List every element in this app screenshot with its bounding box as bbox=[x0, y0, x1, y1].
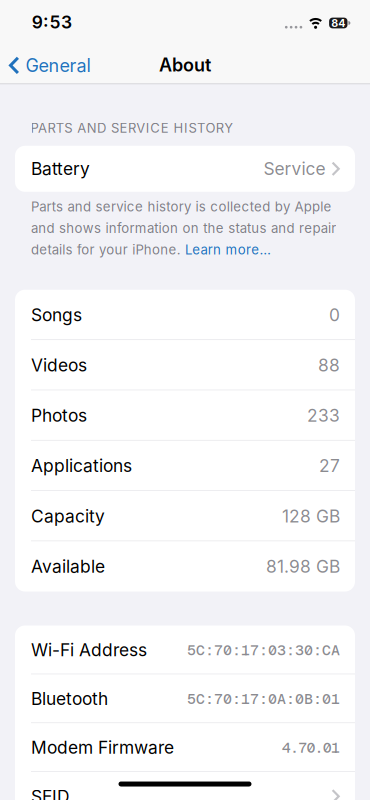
staticText: Videos bbox=[31, 355, 87, 376]
staticText: 27 bbox=[319, 455, 340, 476]
button[interactable]: SEID bbox=[15, 772, 355, 800]
staticText: 128 GB bbox=[282, 506, 340, 527]
staticText: Applications bbox=[31, 455, 132, 476]
staticText: 233 bbox=[307, 405, 340, 426]
staticText: 88 bbox=[318, 355, 340, 376]
staticText: Capacity bbox=[31, 506, 105, 527]
staticText: Service bbox=[263, 158, 325, 179]
staticText: 4.70.01 bbox=[282, 738, 340, 757]
staticText: Available bbox=[31, 556, 105, 577]
staticText: 9:53 bbox=[32, 12, 72, 33]
staticText: Parts and service history is collected b… bbox=[31, 199, 331, 215]
staticText: Battery bbox=[31, 158, 90, 179]
staticText: Modem Firmware bbox=[31, 737, 174, 758]
staticText: Songs bbox=[31, 304, 82, 325]
staticText: SEID bbox=[31, 786, 70, 800]
staticText: Bluetooth bbox=[31, 688, 108, 709]
staticText: 81.98 GB bbox=[266, 556, 340, 577]
staticText: 0 bbox=[329, 304, 340, 325]
staticText: Wi-Fi Address bbox=[31, 639, 147, 660]
staticText: details for your iPhone. bbox=[31, 242, 185, 258]
staticText: 84 bbox=[331, 16, 345, 29]
staticText: 5C:70:17:0A:0B:01 bbox=[187, 689, 340, 708]
staticText: and shows information on the status and … bbox=[31, 220, 336, 236]
button[interactable]: Battery bbox=[15, 146, 355, 192]
staticText: About bbox=[159, 54, 211, 76]
staticText: PARTS AND SERVICE HISTORY bbox=[30, 120, 233, 136]
staticText: Learn more… bbox=[185, 242, 270, 258]
button[interactable]: Learn more… bbox=[185, 242, 270, 258]
staticText: Photos bbox=[31, 405, 87, 426]
staticText: General bbox=[25, 54, 90, 76]
button[interactable]: Back to General bbox=[0, 0, 90, 76]
staticText: 5C:70:17:03:30:CA bbox=[187, 640, 340, 660]
